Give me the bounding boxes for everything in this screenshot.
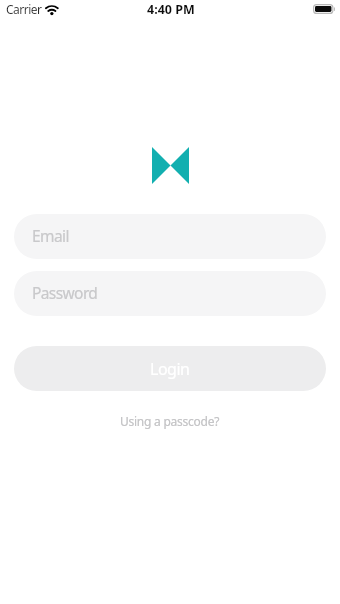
other: App logo xyxy=(152,147,189,184)
staticText: Email xyxy=(32,225,69,246)
other: Battery xyxy=(313,4,335,14)
staticText: Password xyxy=(32,282,98,303)
other: Wi-Fi xyxy=(44,4,60,17)
button[interactable]: Using a passcode? xyxy=(112,409,228,433)
button[interactable]: Email xyxy=(14,214,326,259)
button[interactable]: Password xyxy=(14,271,326,316)
staticText: Login xyxy=(150,358,190,380)
staticText: 4:40 PM xyxy=(147,1,195,18)
staticText: Carrier xyxy=(6,1,42,17)
staticText: Using a passcode? xyxy=(120,413,220,429)
button[interactable]: Login xyxy=(14,346,326,391)
